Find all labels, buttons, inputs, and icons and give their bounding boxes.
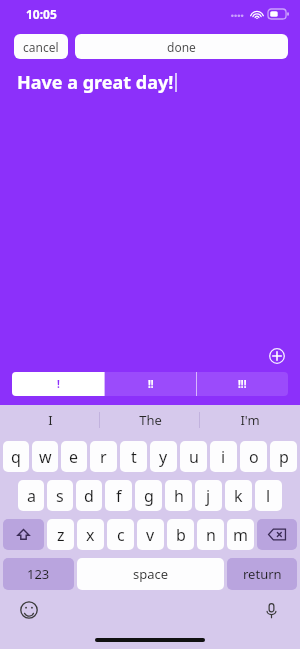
button[interactable]: d: [76, 480, 102, 511]
button[interactable]: space: [77, 558, 224, 590]
button[interactable]: s: [47, 480, 73, 511]
button[interactable]: done: [75, 34, 288, 59]
staticText: x: [86, 524, 95, 546]
button[interactable]: t: [120, 441, 147, 472]
staticText: q: [11, 446, 21, 468]
button[interactable]: o: [240, 441, 267, 472]
staticText: g: [144, 485, 154, 507]
button[interactable]: p: [270, 441, 297, 472]
staticText: v: [146, 524, 155, 546]
staticText: d: [84, 485, 94, 507]
button[interactable]: Voice input: [258, 597, 284, 623]
button[interactable]: u: [180, 441, 207, 472]
button[interactable]: return: [227, 558, 297, 590]
staticText: return: [243, 565, 282, 583]
button[interactable]: Backspace: [257, 519, 297, 550]
button[interactable]: I: [0, 405, 100, 435]
button[interactable]: a: [18, 480, 44, 511]
staticText: The: [139, 411, 162, 429]
button[interactable]: i: [210, 441, 237, 472]
button[interactable]: !!!: [197, 372, 288, 396]
staticText: y: [159, 446, 168, 468]
staticText: u: [189, 446, 199, 468]
staticText: space: [133, 565, 169, 583]
button[interactable]: Shift: [3, 519, 44, 550]
button[interactable]: c: [107, 519, 134, 550]
staticText: a: [27, 485, 36, 507]
button[interactable]: Add: [266, 345, 288, 367]
staticText: e: [69, 446, 79, 468]
staticText: s: [56, 485, 64, 507]
staticText: !: [57, 377, 60, 391]
staticText: r: [100, 446, 107, 468]
button[interactable]: y: [150, 441, 177, 472]
button[interactable]: !!: [105, 372, 196, 396]
staticText: Have a great day!: [17, 70, 174, 95]
button[interactable]: k: [225, 480, 252, 511]
staticText: 10:05: [26, 6, 57, 22]
button[interactable]: l: [255, 480, 282, 511]
button[interactable]: q: [3, 441, 29, 472]
staticText: b: [176, 524, 186, 546]
staticText: l: [266, 485, 271, 507]
staticText: c: [117, 524, 125, 546]
staticText: k: [234, 485, 243, 507]
button[interactable]: m: [227, 519, 254, 550]
staticText: t: [131, 446, 137, 468]
staticText: I'm: [240, 411, 260, 429]
staticText: z: [57, 524, 65, 546]
button[interactable]: f: [105, 480, 132, 511]
staticText: o: [249, 446, 259, 468]
button[interactable]: v: [137, 519, 164, 550]
staticText: h: [174, 485, 184, 507]
staticText: !!!: [238, 377, 247, 391]
button[interactable]: h: [165, 480, 192, 511]
button[interactable]: g: [135, 480, 162, 511]
button[interactable]: Emoji: [16, 597, 42, 623]
staticText: 123: [27, 565, 50, 583]
staticText: w: [39, 446, 52, 468]
staticText: p: [279, 446, 289, 468]
button[interactable]: b: [167, 519, 194, 550]
button[interactable]: !: [12, 372, 104, 396]
button[interactable]: cancel: [14, 34, 68, 59]
button[interactable]: 123: [3, 558, 74, 590]
button[interactable]: The: [100, 405, 200, 435]
button[interactable]: z: [47, 519, 74, 550]
staticText: m: [233, 524, 248, 546]
button[interactable]: j: [195, 480, 222, 511]
staticText: I: [48, 411, 53, 429]
staticText: f: [116, 485, 122, 507]
button[interactable]: n: [197, 519, 224, 550]
staticText: cancel: [23, 39, 59, 55]
staticText: !!: [148, 377, 154, 391]
button[interactable]: r: [90, 441, 117, 472]
button[interactable]: e: [61, 441, 87, 472]
button[interactable]: I'm: [200, 405, 300, 435]
button[interactable]: x: [77, 519, 104, 550]
staticText: done: [167, 39, 196, 55]
button[interactable]: w: [32, 441, 58, 472]
staticText: j: [206, 485, 211, 507]
staticText: n: [206, 524, 216, 546]
staticText: i: [221, 446, 226, 468]
